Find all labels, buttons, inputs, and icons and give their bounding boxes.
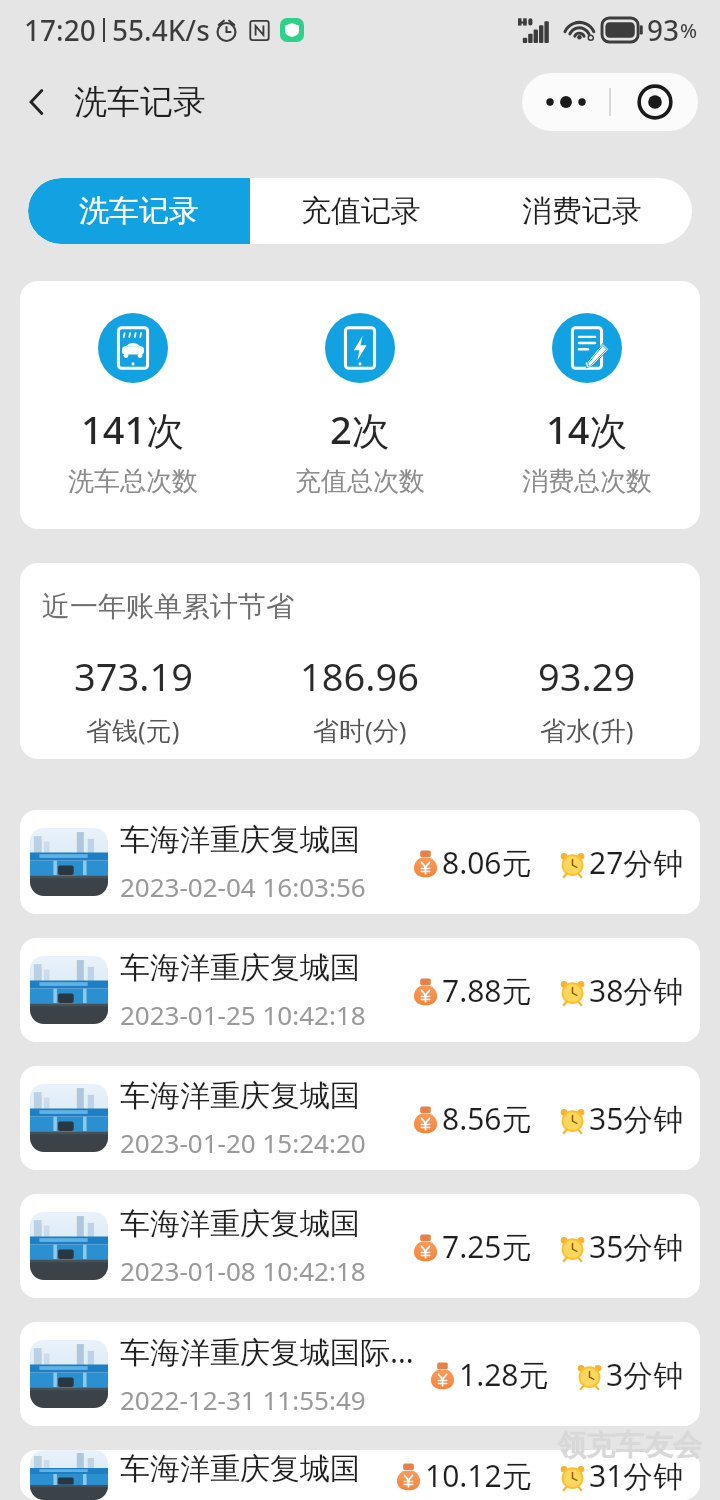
staticText: 洗车记录 <box>79 192 199 230</box>
button[interactable]: 充值记录 <box>250 178 471 244</box>
staticText: 领克车友会 <box>557 1427 702 1464</box>
button[interactable]: 2次 <box>246 281 473 529</box>
button[interactable]: 洗车记录 <box>28 178 250 244</box>
button[interactable]: 消费记录 <box>471 178 692 244</box>
button[interactable]: 车海洋重庆复城国际… <box>20 1322 700 1426</box>
staticText: 消费记录 <box>522 192 642 230</box>
button[interactable]: 车海洋重庆复城国际… <box>20 810 700 914</box>
staticText: 3分钟 <box>606 1354 684 1395</box>
staticText: 7.88元 <box>442 970 532 1011</box>
staticText: 35分钟 <box>589 1098 684 1139</box>
button[interactable]: 14次 <box>473 281 700 529</box>
staticText: 车海洋重庆复城国际… <box>120 949 409 987</box>
staticText: 93.29 <box>538 650 636 702</box>
staticText: 38分钟 <box>589 970 684 1011</box>
staticText: 2022-12-31 11:55:49 <box>120 1382 366 1417</box>
staticText: 充值总次数 <box>295 465 425 498</box>
staticText: 近一年账单累计节省 <box>42 589 294 624</box>
staticText: 141次 <box>81 403 185 455</box>
staticText: 373.19 <box>74 650 193 702</box>
staticText: 8.06元 <box>442 842 532 883</box>
staticText: 车海洋重庆复城国际… <box>120 821 409 859</box>
staticText: 14次 <box>546 403 628 455</box>
staticText: 7.25元 <box>442 1226 532 1267</box>
button[interactable]: More options <box>522 73 609 131</box>
staticText: 省水(升) <box>540 712 634 748</box>
staticText: 洗车总次数 <box>68 465 198 498</box>
staticText: 35分钟 <box>589 1226 684 1267</box>
staticText: 消费总次数 <box>522 465 652 498</box>
staticText: 2023-02-04 16:03:56 <box>120 869 366 904</box>
staticText: 55.4K/s <box>112 11 210 49</box>
staticText: 93 <box>647 11 680 49</box>
staticText: 2023-01-08 10:42:18 <box>120 1253 366 1288</box>
staticText: 10.12元 <box>425 1455 532 1496</box>
staticText: 17:20 <box>24 11 96 49</box>
staticText: 186.96 <box>300 650 419 702</box>
staticText: 洗车记录 <box>74 81 206 123</box>
staticText: 31分钟 <box>589 1455 684 1496</box>
button[interactable]: 车海洋重庆复城国际… <box>20 1066 700 1170</box>
staticText: 1.28元 <box>459 1354 549 1395</box>
button[interactable]: 车海洋重庆复城国际… <box>20 1450 700 1500</box>
button[interactable]: Back <box>0 65 74 139</box>
staticText: 8.56元 <box>442 1098 532 1139</box>
button[interactable]: 车海洋重庆复城国际… <box>20 938 700 1042</box>
staticText: 2023-01-20 15:24:20 <box>120 1125 366 1160</box>
staticText: 车海洋重庆复城国际… <box>120 1077 409 1115</box>
staticText: 2次 <box>330 403 390 455</box>
button[interactable]: 141次 <box>20 281 246 529</box>
staticText: 27分钟 <box>589 842 684 883</box>
staticText: 省钱(元) <box>86 712 180 748</box>
staticText: 充值记录 <box>301 192 421 230</box>
button[interactable]: 车海洋重庆复城国际… <box>20 1194 700 1298</box>
staticText: 车海洋重庆复城国际… <box>120 1450 392 1488</box>
staticText: 车海洋重庆复城国际… <box>120 1331 414 1372</box>
staticText: 2023-01-25 10:42:18 <box>120 997 366 1032</box>
staticText: % <box>680 17 698 44</box>
button[interactable]: Close <box>611 73 698 131</box>
staticText: 车海洋重庆复城国际… <box>120 1205 409 1243</box>
staticText: 省时(分) <box>313 712 407 748</box>
